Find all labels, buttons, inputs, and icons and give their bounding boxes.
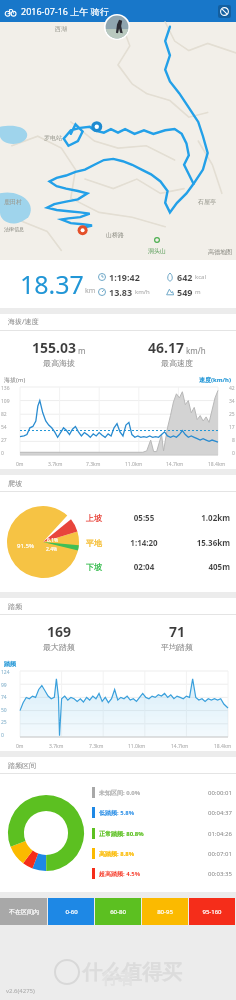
staticText: m <box>195 288 201 296</box>
staticText: 石屋亭 <box>198 198 216 206</box>
staticText: 1.02km <box>168 512 230 523</box>
button[interactable]: 未知区间: 0.0% <box>92 787 232 798</box>
staticText: 高踏频: 8.8% <box>99 850 208 858</box>
staticText: 0m <box>16 743 24 750</box>
staticText: 549 <box>177 286 193 298</box>
staticText: 05:55 <box>120 512 168 523</box>
staticText: 99 <box>1 682 7 689</box>
staticText: 速度(km/h) <box>199 376 232 384</box>
staticText: 海拔(m) <box>4 376 26 384</box>
button[interactable]: Route map <box>0 22 236 260</box>
staticText: 最高海拔 <box>43 358 75 368</box>
staticText: 2.4% <box>46 546 58 553</box>
button[interactable]: 不在区间内 <box>0 898 47 925</box>
staticText: 109 <box>1 398 10 405</box>
staticText: 洞头山 <box>148 247 166 255</box>
staticText: 00:04:37 <box>208 809 232 817</box>
staticText: 11.0km <box>125 461 143 468</box>
staticText: v2.6(4275) <box>6 987 35 995</box>
staticText: 642 <box>177 271 193 283</box>
button[interactable]: 低踏频: 5.8% <box>92 807 232 818</box>
button[interactable]: 正常踏频: 80.8% <box>92 828 232 839</box>
staticText: 82 <box>1 411 7 418</box>
staticText: 00:03:35 <box>208 870 232 878</box>
staticText: 155.03 <box>32 338 76 357</box>
button[interactable]: 超高踏频: 4.5% <box>92 868 232 879</box>
staticText: 136 <box>1 385 10 392</box>
staticText: 山桥路 <box>106 231 124 239</box>
staticText: 海拔/速度 <box>8 317 39 327</box>
staticText: 行者 <box>102 969 134 989</box>
staticText: 60-80 <box>110 908 126 916</box>
button[interactable]: 0-60 <box>48 898 94 925</box>
staticText: 0 <box>1 450 4 457</box>
staticText: 0m <box>16 461 24 468</box>
staticText: 3.7km <box>49 743 64 750</box>
staticText: 8 <box>232 437 235 444</box>
staticText: 91.5% <box>17 542 34 550</box>
staticText: 18.4km <box>214 743 232 750</box>
staticText: 7.3km <box>89 743 104 750</box>
staticText: 00:00:01 <box>208 789 232 797</box>
staticText: 低踏频: 5.8% <box>99 809 208 817</box>
staticText: 0 <box>232 450 235 457</box>
staticText: 法律信息 <box>4 226 24 232</box>
staticText: 爬坡 <box>8 479 22 488</box>
staticText: km/h <box>135 288 150 296</box>
staticText: 7.3km <box>86 461 101 468</box>
staticText: m <box>78 345 86 356</box>
staticText: 不在区间内 <box>9 908 39 916</box>
staticText: 1:14:20 <box>120 537 168 548</box>
staticText: 80-95 <box>157 908 173 916</box>
staticText: 11.0km <box>128 743 146 750</box>
staticText: 西湖 <box>55 25 67 33</box>
staticText: km/h <box>186 345 206 356</box>
staticText: 00:07:01 <box>208 850 232 858</box>
staticText: 下坡 <box>86 562 120 572</box>
staticText: 上坡 <box>86 513 120 523</box>
staticText: 46.17 <box>148 338 184 357</box>
staticText: 02:04 <box>120 561 168 572</box>
staticText: 15.36km <box>168 537 230 548</box>
staticText: 鹿田村 <box>4 198 22 206</box>
staticText: km <box>85 286 96 296</box>
staticText: 25 <box>229 411 235 418</box>
staticText: 平地 <box>86 538 120 548</box>
staticText: 25 <box>1 719 7 726</box>
staticText: 超高踏频: 4.5% <box>99 870 208 878</box>
button[interactable]: 95-160 <box>189 898 235 925</box>
button[interactable]: 60-80 <box>95 898 141 925</box>
staticText: 50 <box>1 707 7 714</box>
staticText: 正常踏频: 80.8% <box>99 830 208 838</box>
staticText: 17 <box>229 424 235 431</box>
staticText: 踏频 <box>4 660 16 668</box>
staticText: 405m <box>168 561 230 572</box>
staticText: 14.7km <box>166 461 184 468</box>
staticText: 14.7km <box>171 743 189 750</box>
staticText: 踏频区间 <box>8 761 36 770</box>
staticText: 最大踏频 <box>43 642 75 652</box>
staticText: 什么值得买 <box>82 960 182 985</box>
button[interactable]: 高踏频: 8.8% <box>92 848 232 859</box>
staticText: 平均踏频 <box>161 642 193 652</box>
button[interactable]: Profile photo <box>104 14 130 40</box>
button[interactable]: Settings <box>218 5 231 18</box>
staticText: 124 <box>1 669 10 676</box>
staticText: 高德地图 <box>208 248 232 256</box>
button[interactable]: 80-95 <box>142 898 188 925</box>
staticText: 1:19:42 <box>109 271 140 283</box>
staticText: 18.37 <box>20 267 84 301</box>
staticText: 罗电站 <box>44 134 62 142</box>
staticText: 最高速度 <box>161 358 193 368</box>
staticText: 0-60 <box>65 908 78 916</box>
staticText: 6.1% <box>47 537 59 544</box>
staticText: 未知区间: 0.0% <box>99 789 208 797</box>
staticText: 34 <box>229 398 235 405</box>
staticText: 13.83 <box>109 286 133 298</box>
staticText: 27 <box>1 437 7 444</box>
staticText: 3.7km <box>48 461 63 468</box>
staticText: 42 <box>229 385 235 392</box>
staticText: 71 <box>169 622 186 641</box>
staticText: 169 <box>47 622 72 641</box>
staticText: 95-160 <box>202 908 222 916</box>
